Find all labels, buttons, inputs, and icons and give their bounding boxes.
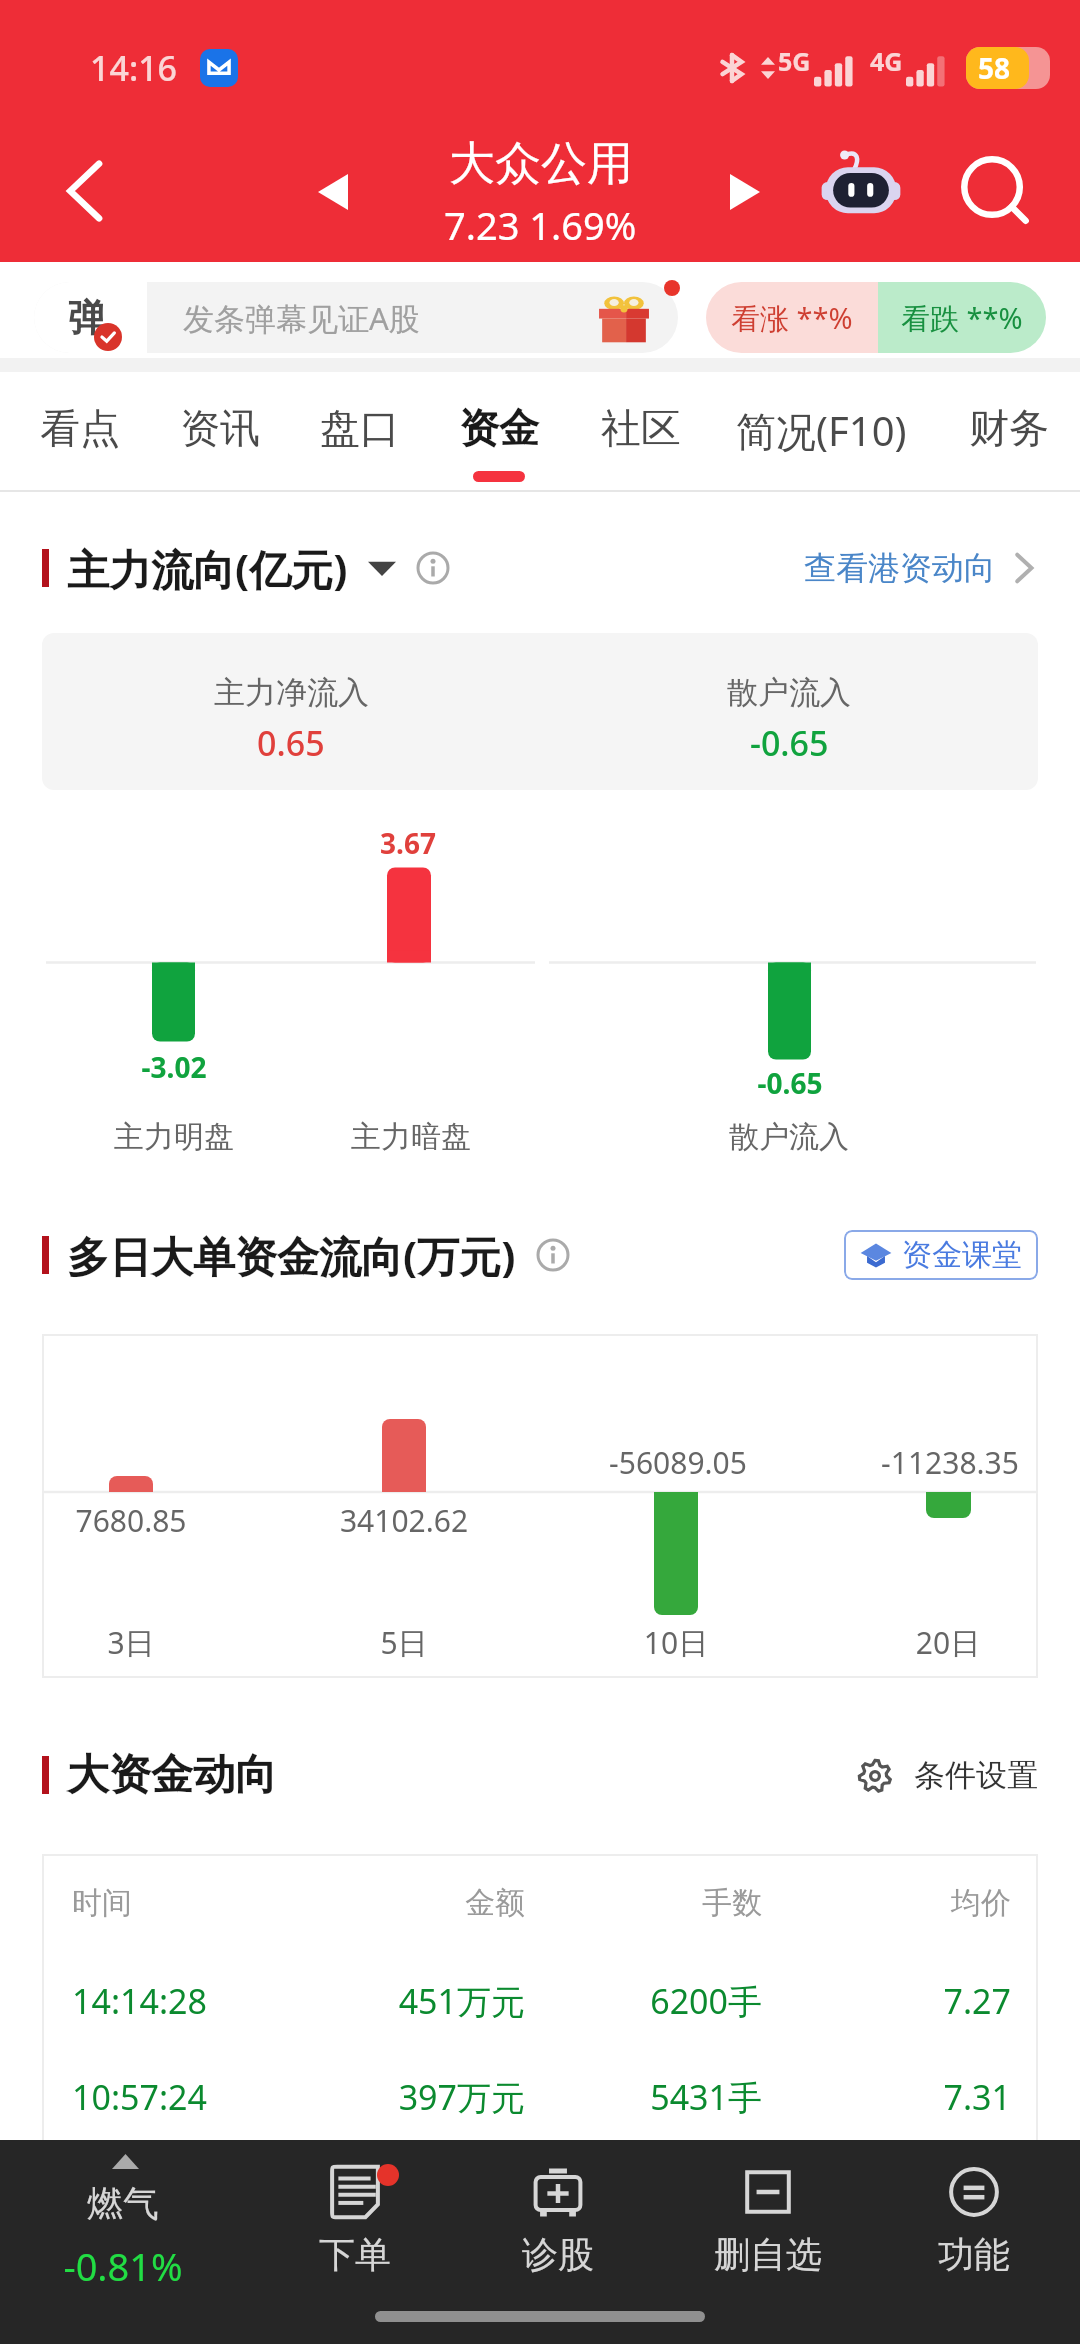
button[interactable]: 资讯 — [110, 372, 330, 488]
button[interactable]: 看点 — [0, 372, 190, 488]
staticText: 大资金动向 — [67, 1749, 277, 1802]
staticText: 财务 — [969, 403, 1049, 453]
button[interactable]: 诊股 — [458, 2162, 658, 2332]
staticText: 10:57:24 — [72, 2074, 207, 2120]
staticText: 条件设置 — [914, 1756, 1038, 1795]
staticText: 散户流入 — [727, 673, 851, 712]
button[interactable]: 财务 — [899, 372, 1080, 488]
button[interactable]: AI assistant — [820, 146, 902, 228]
staticText: 发条弹幕见证A股 — [183, 297, 420, 339]
staticText: 资金 — [459, 403, 539, 453]
button[interactable]: 看跌 **% — [878, 282, 1046, 353]
staticText: 简况(F10) — [736, 403, 907, 458]
staticText: 14:14:28 — [72, 1978, 207, 2024]
staticText: -3.02 — [118, 1048, 230, 1086]
staticText: 7.27 — [802, 1978, 1011, 2024]
button[interactable]: 资金课堂 — [844, 1230, 1038, 1280]
staticText: 燃气 — [0, 2181, 246, 2226]
staticText: 资金课堂 — [902, 1236, 1022, 1274]
button[interactable]: 弹 — [34, 282, 678, 353]
staticText: 6200手 — [542, 1978, 762, 2024]
staticText: -56089.05 — [598, 1442, 758, 1483]
staticText: 451万元 — [227, 1978, 525, 2024]
staticText: 397万元 — [227, 2074, 525, 2120]
staticText: 58 — [978, 49, 1011, 87]
staticText: 7680.85 — [56, 1500, 206, 1541]
button[interactable]: 燃气 — [0, 2140, 250, 2344]
staticText: 0.65 — [257, 720, 325, 766]
button[interactable]: 条件设置 — [858, 1756, 1038, 1795]
staticText: 20日 — [868, 1622, 1028, 1663]
staticText: 5431手 — [542, 2074, 762, 2120]
staticText: 散户流入 — [719, 1118, 859, 1156]
staticText: 金额 — [227, 1884, 525, 1922]
staticText: 均价 — [802, 1884, 1011, 1922]
button[interactable]: 资金 — [389, 372, 609, 488]
staticText: -0.65 — [734, 1064, 846, 1102]
staticText: 5日 — [324, 1622, 484, 1663]
staticText: 14:16 — [90, 45, 178, 91]
staticText: 弹 — [68, 294, 106, 342]
staticText: 下单 — [319, 2232, 391, 2277]
staticText: 7.31 — [802, 2074, 1011, 2120]
staticText: 主力明盘 — [104, 1118, 244, 1156]
staticText: 3日 — [56, 1622, 206, 1663]
staticText: 查看港资动向 — [804, 548, 996, 588]
staticText: 手数 — [542, 1884, 762, 1922]
button[interactable]: 删自选 — [668, 2162, 868, 2332]
staticText: 主力净流入 — [214, 673, 369, 712]
staticText: 删自选 — [714, 2232, 822, 2277]
button[interactable]: Back — [48, 155, 120, 227]
staticText: 社区 — [601, 403, 681, 453]
button[interactable]: 社区 — [531, 372, 751, 488]
staticText: 盘口 — [320, 403, 400, 453]
staticText: 7.23 1.69% — [444, 199, 637, 251]
button[interactable]: 功能 — [874, 2162, 1074, 2332]
staticText: 看跌 **% — [901, 298, 1023, 338]
staticText: 时间 — [72, 1884, 132, 1922]
staticText: -0.81% — [0, 2240, 246, 2292]
staticText: 5G — [778, 44, 811, 78]
staticText: 诊股 — [522, 2232, 594, 2277]
staticText: -0.65 — [750, 720, 829, 766]
button[interactable]: 盘口 — [250, 372, 470, 488]
button[interactable]: Search — [950, 148, 1040, 238]
staticText: 看点 — [40, 403, 120, 453]
button[interactable]: 下单 — [255, 2162, 455, 2332]
staticText: 10日 — [596, 1622, 756, 1663]
staticText: 3.67 — [352, 824, 464, 862]
button[interactable]: Next stock — [712, 159, 778, 225]
staticText: 功能 — [938, 2232, 1010, 2277]
staticText: 大众公用 — [449, 135, 633, 193]
staticText: 4G — [870, 44, 903, 78]
staticText: 多日大单资金流向(万元) — [67, 1227, 516, 1284]
staticText: 主力流向(亿元) — [67, 540, 348, 597]
button[interactable]: 简况(F10) — [711, 372, 931, 488]
button[interactable]: 看涨 **% — [706, 282, 878, 353]
staticText: 34102.62 — [324, 1500, 484, 1541]
staticText: -11238.35 — [870, 1442, 1030, 1483]
staticText: 看涨 **% — [731, 298, 853, 338]
staticText: 资讯 — [180, 403, 260, 453]
button[interactable]: Previous stock — [300, 159, 366, 225]
staticText: 主力暗盘 — [341, 1118, 481, 1156]
